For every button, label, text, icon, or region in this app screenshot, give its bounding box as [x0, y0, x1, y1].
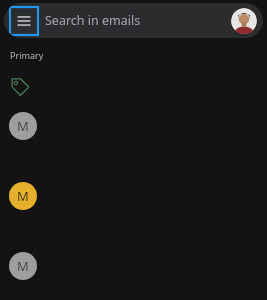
button[interactable]: Account: [231, 8, 257, 34]
other: Label: [9, 75, 31, 97]
button[interactable]: Open navigation drawer: [10, 7, 38, 35]
button[interactable]: Label: [0, 73, 267, 99]
staticText: M: [17, 187, 29, 205]
button[interactable]: M: [0, 252, 267, 280]
staticText: M: [17, 257, 29, 275]
button[interactable]: M: [0, 112, 267, 140]
staticText: Search in emails: [45, 12, 231, 29]
staticText: Primary: [10, 49, 44, 61]
staticText: M: [17, 117, 29, 135]
button[interactable]: M: [0, 182, 267, 210]
